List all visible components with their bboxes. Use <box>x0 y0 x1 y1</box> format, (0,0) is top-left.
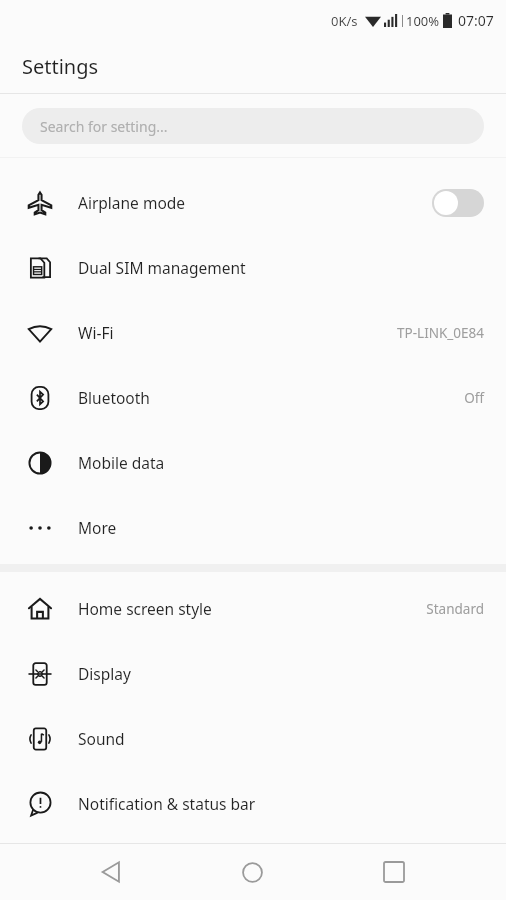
button[interactable]: Mobile data <box>0 430 506 495</box>
staticText: Settings <box>22 53 99 80</box>
staticText: Sound <box>78 728 125 749</box>
staticText: 100% <box>406 12 440 30</box>
button[interactable]: Back <box>81 844 141 900</box>
button[interactable]: Home <box>222 844 282 900</box>
staticText: Bluetooth <box>78 387 150 408</box>
button[interactable]: Notification & status bar <box>0 771 506 836</box>
staticText: Display <box>78 663 131 684</box>
staticText: Mobile data <box>78 452 165 473</box>
staticText: Wi-Fi <box>78 322 114 343</box>
staticText: Off <box>464 389 484 407</box>
staticText: 0K/s <box>331 12 358 30</box>
staticText: Airplane mode <box>78 192 186 213</box>
button[interactable]: Airplane mode toggle <box>432 189 484 217</box>
staticText: More <box>78 517 117 538</box>
staticText: TP-LINK_0E84 <box>397 324 484 342</box>
button[interactable]: Airplane mode <box>0 170 506 235</box>
button[interactable]: Home screen style <box>0 576 506 641</box>
staticText: Search for setting... <box>40 117 168 136</box>
staticText: Dual SIM management <box>78 257 246 278</box>
button[interactable]: Sound <box>0 706 506 771</box>
button[interactable]: Display <box>0 641 506 706</box>
button[interactable]: Dual SIM management <box>0 235 506 300</box>
staticText: 07:07 <box>458 11 494 30</box>
staticText: Home screen style <box>78 598 212 619</box>
staticText: Standard <box>426 600 484 618</box>
button[interactable]: More <box>0 495 506 560</box>
button[interactable]: Recents <box>364 844 424 900</box>
button[interactable]: Wi-Fi <box>0 300 506 365</box>
button[interactable]: Search for setting... <box>22 108 484 144</box>
staticText: Notification & status bar <box>78 793 256 814</box>
button[interactable]: Bluetooth <box>0 365 506 430</box>
